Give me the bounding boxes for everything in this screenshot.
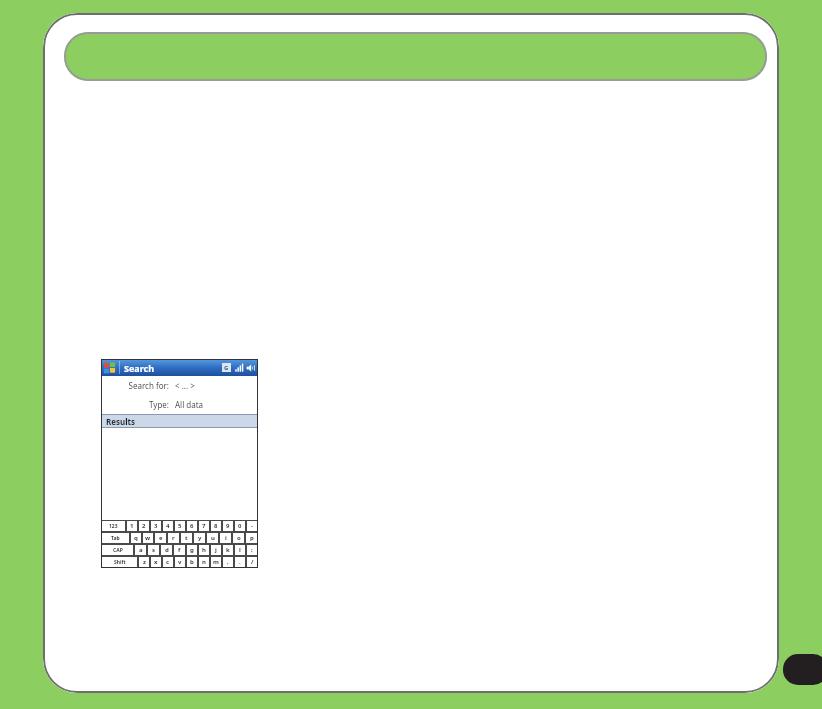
button[interactable] [64,32,767,81]
button[interactable]: l [234,544,246,556]
button[interactable]: v [174,556,186,568]
staticText: u [211,534,215,542]
staticText: d [165,546,169,554]
staticText: s [152,546,156,554]
staticText: 5 [178,522,182,530]
staticText: o [237,534,241,542]
button[interactable]: m [210,556,222,568]
staticText: 1 [130,522,134,530]
button[interactable]: r [167,532,180,544]
button[interactable]: d [160,544,173,556]
staticText: g [190,546,194,554]
button[interactable]: / [246,556,258,568]
staticText: y [198,534,202,542]
staticText: h [202,546,206,554]
staticText: x [154,558,158,566]
staticText: z [143,558,146,566]
button[interactable]: . [234,556,246,568]
staticText: < ... > [175,380,195,391]
button[interactable]: 6 [186,520,198,532]
button[interactable]: j [210,544,222,556]
button[interactable]: w [142,532,154,544]
button[interactable]: b [186,556,198,568]
button[interactable]: 7 [198,520,210,532]
button[interactable]: 4 [162,520,174,532]
button[interactable]: a [134,544,147,556]
other: Start [103,361,116,374]
button[interactable]: Shift [101,556,138,568]
button[interactable]: 5 [174,520,186,532]
staticText: k [226,546,230,554]
button[interactable]: ; [246,544,258,556]
staticText: t [185,534,188,542]
other: GPRS [222,363,231,372]
staticText: CAP [113,547,123,554]
staticText: w [145,534,151,542]
button[interactable]: o [232,532,245,544]
staticText: G [224,364,229,372]
button[interactable]: 3 [150,520,162,532]
button[interactable]: s [147,544,160,556]
button[interactable]: p [245,532,258,544]
staticText: Results [106,416,136,427]
button[interactable]: i [219,532,232,544]
staticText: q [134,534,138,542]
button[interactable]: , [222,556,234,568]
button[interactable]: 0 [234,520,246,532]
staticText: j [215,546,217,554]
button[interactable]: Results [101,414,258,428]
button[interactable]: 2 [138,520,150,532]
staticText: e [159,534,163,542]
staticText: 8 [214,522,218,530]
staticText: , [227,558,229,566]
staticText: a [139,546,143,554]
staticText: Shift [114,559,126,566]
button[interactable]: Search for: [101,376,258,395]
button[interactable]: c [162,556,174,568]
button[interactable]: Tab [101,532,130,544]
staticText: Search for: [101,380,169,391]
button[interactable]: - [246,520,258,532]
staticText: All data [175,399,204,410]
staticText: l [239,546,241,554]
staticText: 7 [202,522,206,530]
button[interactable]: 9 [222,520,234,532]
button[interactable]: g [186,544,198,556]
button[interactable]: x [150,556,162,568]
staticText: 9 [226,522,230,530]
staticText: 3 [154,522,158,530]
button[interactable]: 123 [101,520,126,532]
staticText: 123 [109,523,118,530]
staticText: 0 [238,522,242,530]
button[interactable]: k [222,544,234,556]
button[interactable]: u [206,532,219,544]
button[interactable]: h [198,544,210,556]
staticText: Search [124,362,155,374]
button[interactable]: t [180,532,193,544]
staticText: Tab [111,535,120,542]
other: Signal strength [234,362,244,373]
button[interactable]: CAP [101,544,134,556]
button[interactable]: e [154,532,167,544]
button[interactable]: Start [101,359,258,376]
button[interactable]: 1 [126,520,138,532]
staticText: m [213,558,219,566]
button[interactable]: y [193,532,206,544]
staticText: 2 [142,522,146,530]
staticText: ; [251,546,253,554]
staticText: 4 [166,522,170,530]
button[interactable]: Type: [101,395,258,414]
button[interactable]: q [130,532,142,544]
button[interactable]: Chapter tab [783,654,822,685]
staticText: r [172,534,175,542]
button[interactable]: z [138,556,150,568]
staticText: Type: [101,399,169,410]
button[interactable]: 8 [210,520,222,532]
staticText: p [250,534,254,542]
other: Volume [246,363,256,373]
staticText: v [178,558,182,566]
button[interactable]: n [198,556,210,568]
staticText: / [251,558,254,566]
button[interactable]: f [173,544,186,556]
staticText: f [178,546,181,554]
